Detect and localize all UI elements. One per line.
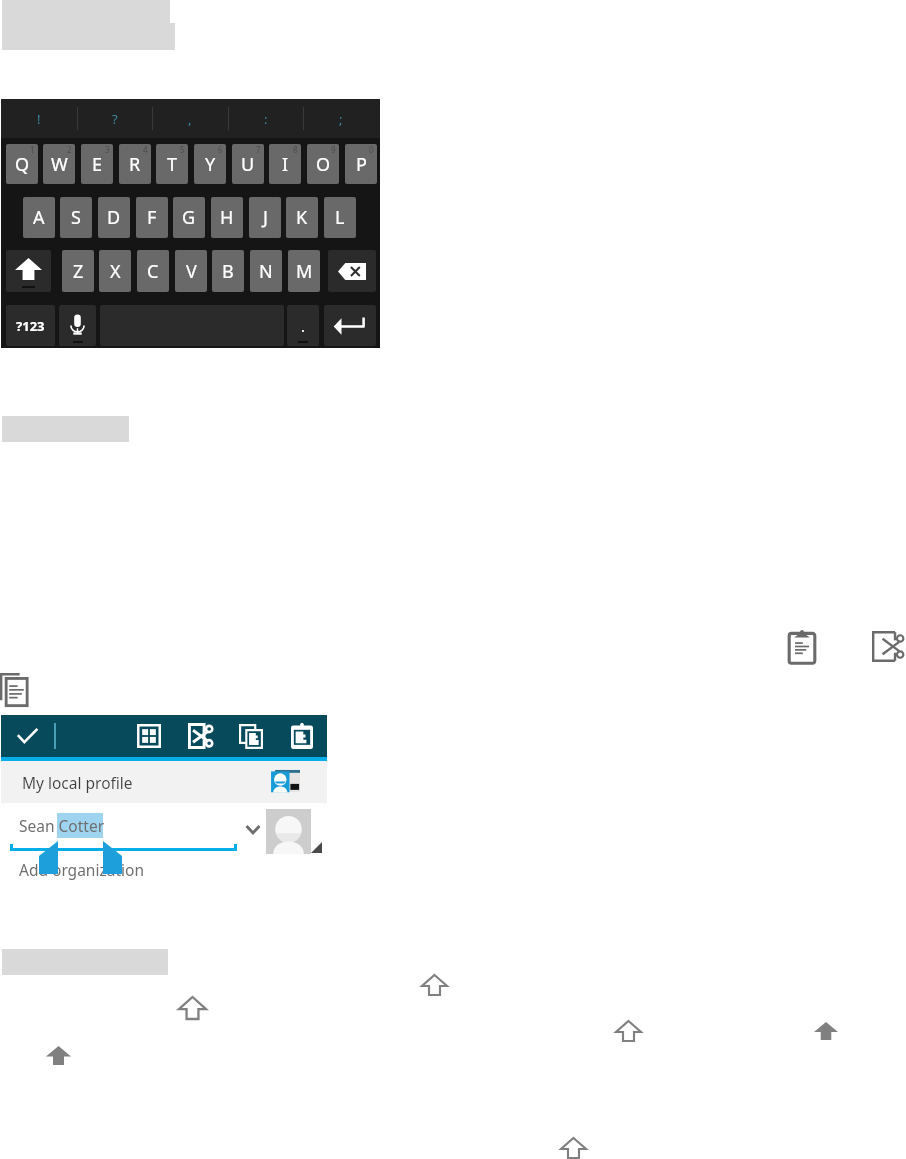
staticText: ?: [112, 110, 118, 128]
staticText: 9: [331, 144, 336, 155]
button[interactable]: :: [228, 99, 304, 138]
button[interactable]: K: [286, 197, 318, 238]
button[interactable]: 5: [156, 144, 188, 184]
staticText: S: [71, 205, 81, 230]
staticText: 6: [218, 144, 223, 155]
staticText: V: [186, 259, 197, 284]
staticText: L: [335, 205, 345, 230]
button[interactable]: Expand: [243, 819, 263, 839]
button[interactable]: S: [60, 197, 92, 238]
button[interactable]: L: [324, 197, 356, 238]
staticText: :: [264, 110, 268, 128]
staticText: .: [301, 316, 306, 336]
button[interactable]: 3: [81, 144, 113, 184]
button[interactable]: 8: [269, 144, 301, 184]
staticText: P: [356, 152, 367, 177]
button[interactable]: M: [288, 250, 320, 292]
button[interactable]: ?123: [6, 305, 55, 346]
staticText: ?123: [16, 317, 45, 335]
button[interactable]: Select all: [128, 715, 170, 757]
staticText: X: [110, 259, 121, 284]
button[interactable]: 0: [345, 144, 377, 184]
button[interactable]: Cut: [872, 631, 904, 662]
button[interactable]: 4: [119, 144, 151, 184]
button[interactable]: Backspace: [328, 250, 376, 292]
button[interactable]: 9: [307, 144, 339, 184]
button[interactable]: ;: [303, 99, 379, 138]
staticText: 3: [105, 144, 110, 155]
staticText: My local profile: [22, 772, 133, 793]
button[interactable]: Paste: [788, 630, 816, 664]
staticText: K: [296, 205, 308, 230]
staticText: B: [222, 259, 234, 284]
button[interactable]: J: [249, 197, 281, 238]
staticText: M: [296, 259, 313, 284]
staticText: 5: [180, 144, 185, 155]
staticText: Y: [205, 152, 216, 177]
button[interactable]: My local profile: [1, 761, 327, 803]
button[interactable]: N: [250, 250, 282, 292]
staticText: T: [167, 152, 178, 177]
staticText: 1: [30, 144, 35, 155]
button[interactable]: Copy: [230, 715, 272, 757]
button[interactable]: Voice input: [59, 305, 96, 346]
staticText: W: [51, 152, 68, 177]
staticText: C: [147, 259, 159, 284]
button[interactable]: 2: [43, 144, 75, 184]
button[interactable]: V: [175, 250, 207, 292]
staticText: 7: [256, 144, 261, 155]
button[interactable]: B: [212, 250, 244, 292]
staticText: 2: [67, 144, 72, 155]
button[interactable]: Done: [1, 715, 53, 757]
staticText: J: [263, 205, 268, 230]
button[interactable]: 6: [194, 144, 226, 184]
button[interactable]: Cut: [179, 715, 221, 757]
staticText: ,: [188, 110, 192, 128]
staticText: H: [220, 205, 234, 230]
staticText: F: [147, 205, 157, 230]
button[interactable]: G: [173, 197, 205, 238]
button[interactable]: ,: [152, 99, 228, 138]
button[interactable]: ?: [77, 99, 153, 138]
button[interactable]: 1: [6, 144, 38, 184]
staticText: A: [33, 205, 45, 230]
button[interactable]: Enter: [324, 305, 376, 346]
staticText: O: [316, 152, 331, 177]
staticText: U: [241, 152, 255, 177]
staticText: Q: [15, 152, 30, 177]
staticText: Add organization: [19, 859, 144, 880]
staticText: G: [182, 205, 196, 230]
button[interactable]: X: [99, 250, 131, 292]
button[interactable]: F: [136, 197, 168, 238]
staticText: 4: [143, 144, 148, 155]
button[interactable]: Paste: [281, 715, 323, 757]
staticText: 8: [293, 144, 298, 155]
button[interactable]: H: [211, 197, 243, 238]
staticText: Z: [73, 259, 84, 284]
button[interactable]: !: [1, 99, 77, 138]
button[interactable]: C: [137, 250, 169, 292]
button[interactable]: .: [287, 305, 319, 346]
staticText: !: [37, 110, 41, 128]
staticText: E: [92, 152, 103, 177]
button[interactable]: A: [23, 197, 55, 238]
button[interactable]: Z: [62, 250, 94, 292]
button[interactable]: Copy: [0, 673, 28, 707]
staticText: 0: [369, 144, 374, 155]
staticText: I: [282, 152, 289, 177]
staticText: R: [129, 152, 141, 177]
button[interactable]: D: [98, 197, 130, 238]
staticText: ;: [339, 110, 343, 128]
staticText: N: [259, 259, 273, 284]
button[interactable]: Shift: [6, 250, 51, 292]
staticText: Sean Cotter: [19, 815, 105, 836]
button[interactable]: 7: [232, 144, 264, 184]
button[interactable]: Contact photo: [266, 809, 311, 854]
staticText: D: [107, 205, 121, 230]
